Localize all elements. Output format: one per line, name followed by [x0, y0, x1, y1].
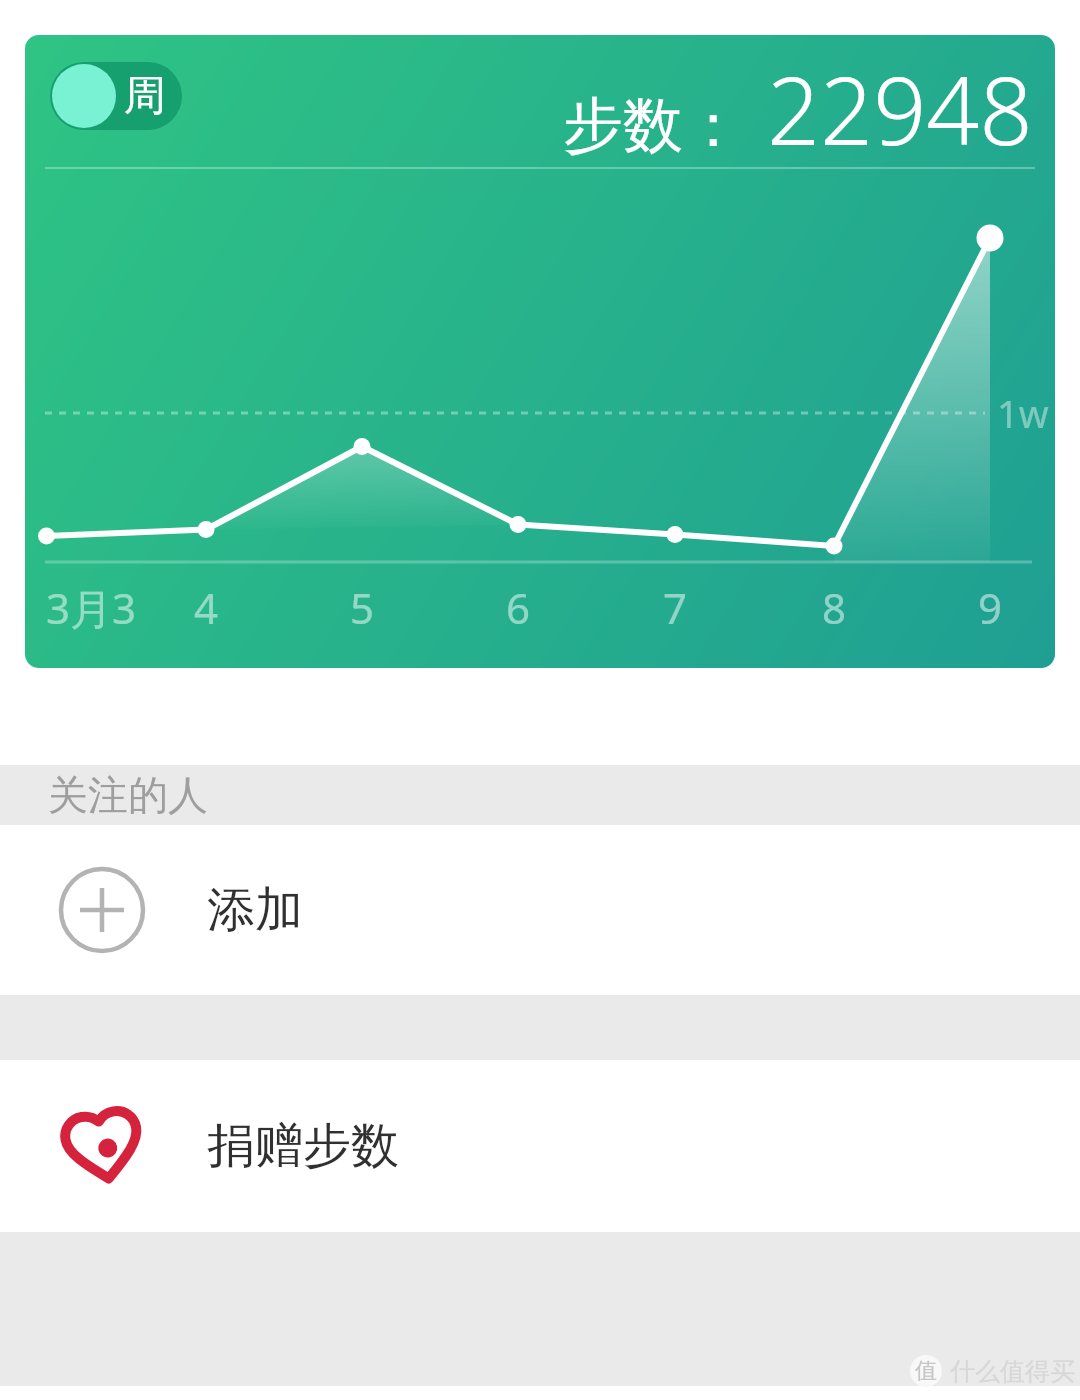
button[interactable]: 周 [50, 62, 182, 130]
staticText: 1w [997, 387, 1049, 439]
staticText: 5 [282, 579, 442, 636]
staticText: 22948 [767, 46, 1033, 173]
staticText: 什么值得买 [950, 1356, 1075, 1387]
staticText: 添加 [207, 880, 303, 940]
button[interactable]: 添加 [0, 825, 1080, 995]
staticText: 周 [124, 70, 166, 123]
staticText: 捐赠步数 [207, 1116, 399, 1176]
staticText: 9 [910, 579, 1055, 636]
staticText: 3月3 [25, 579, 171, 636]
staticText: 值 [915, 1357, 937, 1385]
staticText: 步数： [563, 88, 743, 164]
staticText: 4 [126, 579, 286, 636]
staticText: 8 [754, 579, 914, 636]
staticText: 7 [595, 579, 755, 636]
staticText: 关注的人 [48, 770, 208, 820]
button[interactable]: 捐赠步数 [0, 1060, 1080, 1232]
staticText: 6 [438, 579, 598, 636]
